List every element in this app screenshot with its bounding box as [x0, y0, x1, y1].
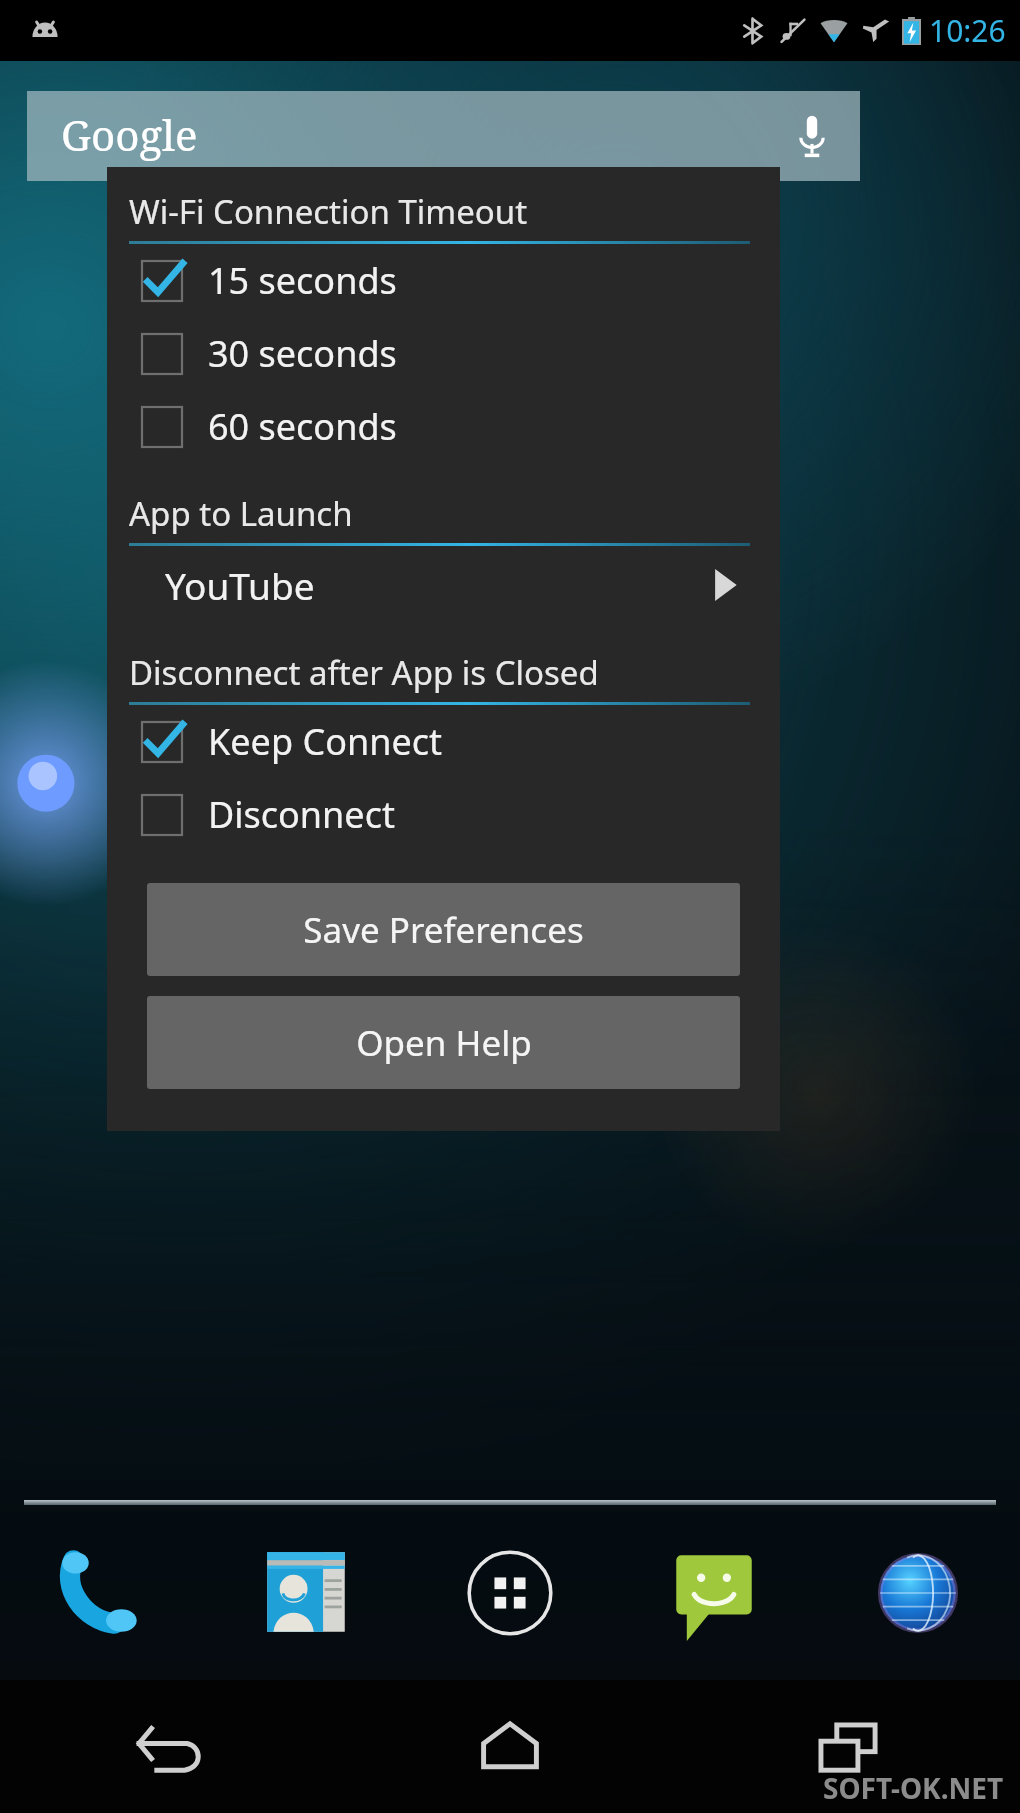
staticText: Disconnect after App is Closed: [129, 650, 599, 695]
button[interactable]: Disconnect: [107, 778, 780, 851]
staticText: Keep Connect: [208, 717, 443, 766]
staticText: Wi-Fi Connection Timeout: [129, 189, 528, 234]
button[interactable]: Browser: [816, 1505, 1020, 1680]
button[interactable]: Apps: [408, 1505, 612, 1680]
staticText: 15 seconds: [208, 256, 397, 305]
button[interactable]: Save Preferences: [147, 883, 740, 976]
button[interactable]: Home: [340, 1680, 680, 1813]
staticText: 60 seconds: [208, 402, 397, 451]
staticText: Open Help: [356, 1019, 532, 1067]
button[interactable]: 30 seconds: [107, 317, 780, 390]
staticText: 10:26: [929, 10, 1006, 51]
button[interactable]: Phone: [0, 1505, 204, 1680]
button[interactable]: Keep Connect: [107, 705, 780, 778]
button[interactable]: YouTube: [107, 546, 780, 624]
button[interactable]: Recent apps: [680, 1680, 1020, 1813]
staticText: Save Preferences: [303, 906, 584, 954]
staticText: Google: [61, 106, 198, 163]
staticText: Disconnect: [208, 790, 395, 839]
staticText: SOFT-OK.NET: [823, 1769, 1004, 1807]
staticText: 30 seconds: [208, 329, 397, 378]
staticText: YouTube: [165, 560, 315, 610]
button[interactable]: Messaging: [612, 1505, 816, 1680]
button[interactable]: 15 seconds: [107, 244, 780, 317]
button[interactable]: Voice search: [790, 114, 834, 158]
staticText: App to Launch: [129, 491, 353, 536]
button[interactable]: Back: [0, 1680, 340, 1813]
button[interactable]: 60 seconds: [107, 390, 780, 463]
button[interactable]: Open Help: [147, 996, 740, 1089]
button[interactable]: Contacts: [204, 1505, 408, 1680]
button[interactable]: Google: [27, 91, 860, 181]
